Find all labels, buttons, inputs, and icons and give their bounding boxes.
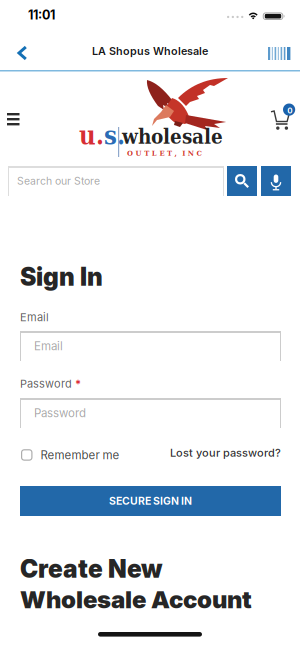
staticText: ,: [175, 148, 177, 157]
staticText: N: [188, 148, 194, 157]
staticText: Sign In: [20, 262, 103, 292]
staticText: Search our Store: [17, 175, 100, 187]
staticText: 11:01: [28, 7, 55, 23]
button[interactable]: Search: [227, 166, 257, 196]
staticText: Email: [20, 310, 49, 324]
button[interactable]: Cart: [268, 100, 297, 128]
staticText: u.: [79, 120, 104, 150]
button[interactable]: Back: [17, 45, 27, 60]
button[interactable]: Remember me: [21, 448, 119, 462]
staticText: I: [182, 148, 185, 157]
staticText: LA Shopus Wholesale: [92, 44, 208, 58]
staticText: *: [75, 377, 81, 390]
button[interactable]: Lost your password?: [170, 446, 281, 459]
button[interactable]: Menu: [7, 113, 19, 125]
button[interactable]: Voice search: [261, 166, 291, 196]
staticText: T: [144, 148, 149, 157]
staticText: Lost your password?: [170, 446, 281, 459]
staticText: T: [167, 148, 172, 157]
staticText: U: [136, 148, 142, 157]
staticText: C: [196, 148, 201, 157]
staticText: Create New: [20, 554, 162, 584]
staticText: Email: [34, 339, 63, 353]
staticText: O: [127, 148, 133, 157]
staticText: s.: [104, 120, 125, 150]
staticText: Wholesale Account: [20, 585, 252, 614]
staticText: Password: [34, 406, 86, 420]
staticText: SECURE SIGN IN: [109, 495, 192, 507]
staticText: Password: [20, 377, 72, 390]
staticText: E: [159, 148, 164, 157]
button[interactable]: SECURE SIGN IN: [20, 486, 281, 516]
staticText: wholesale: [122, 124, 223, 149]
staticText: 0: [287, 106, 292, 115]
staticText: Remember me: [40, 448, 119, 462]
staticText: L: [152, 148, 157, 157]
button[interactable]: Scan barcode: [268, 47, 290, 60]
